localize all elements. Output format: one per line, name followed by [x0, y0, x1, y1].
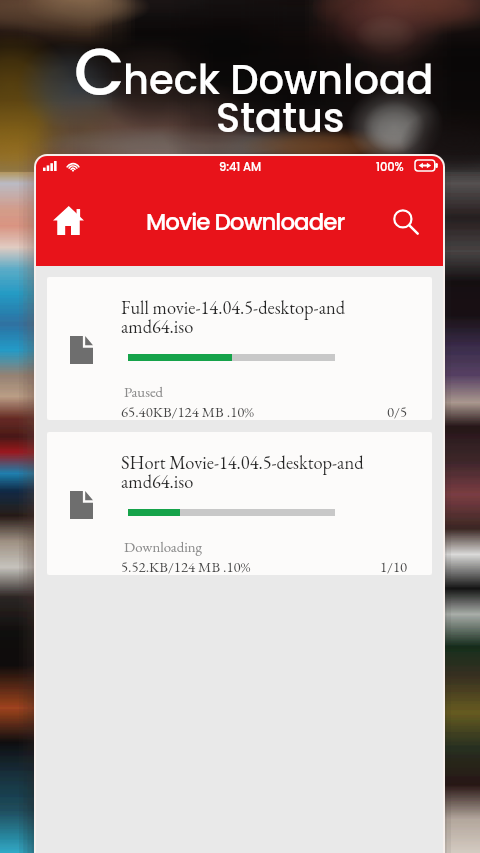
staticText: Downloading [124, 537, 203, 556]
staticText: Full movie-14.04.5-desktop-and [121, 295, 346, 319]
staticText: Paused [124, 382, 164, 401]
button[interactable]: Full movie-14.04.5-desktop-and [47, 277, 432, 420]
button[interactable]: Search [374, 194, 438, 250]
staticText: Movie Downloader [146, 206, 345, 238]
button[interactable]: Home [37, 190, 100, 251]
button[interactable]: SHort Movie-14.04.5-desktop-and [47, 432, 432, 575]
staticText: 65.40KB/124 MB .10% [121, 402, 254, 420]
staticText: 0/5 [387, 402, 408, 420]
staticText: amd64.iso [121, 469, 194, 493]
staticText: 9:41 AM [219, 159, 262, 175]
staticText: Status [216, 90, 345, 146]
staticText: amd64.iso [121, 314, 194, 338]
staticText: 100% [376, 159, 404, 175]
staticText: SHort Movie-14.04.5-desktop-and [121, 450, 364, 474]
staticText: heck Download [123, 52, 434, 108]
staticText: 1/10 [380, 557, 408, 575]
staticText: C [74, 26, 125, 118]
staticText: 5.52.KB/124 MB .10% [121, 557, 251, 575]
